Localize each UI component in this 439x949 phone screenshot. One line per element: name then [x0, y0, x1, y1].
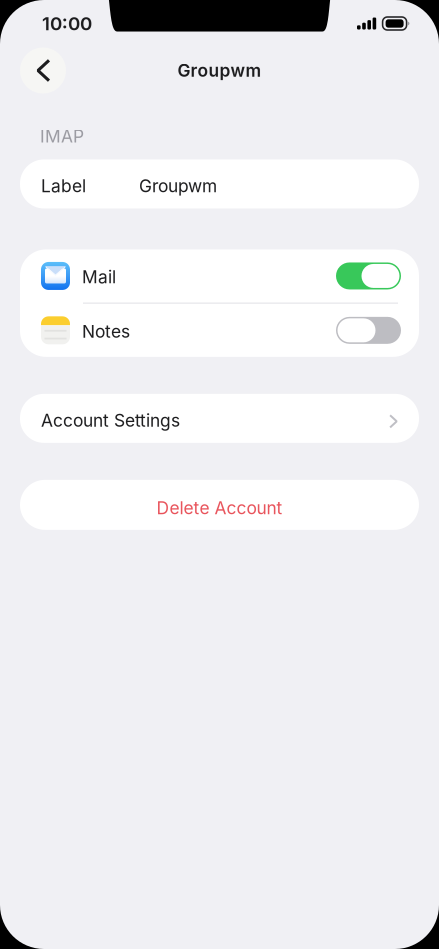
button[interactable]: Delete Account — [20, 480, 419, 530]
button[interactable]: Account Settings — [20, 394, 419, 443]
staticText: Delete Account — [156, 498, 282, 518]
staticText: Label — [41, 176, 86, 196]
button[interactable]: Back — [20, 47, 66, 93]
staticText: 10:00 — [42, 12, 92, 34]
staticText: Groupwm — [177, 60, 261, 81]
staticText: Notes — [82, 321, 130, 341]
staticText: IMAP — [40, 126, 84, 146]
staticText: Groupwm — [139, 176, 217, 196]
staticText: Mail — [82, 267, 116, 287]
staticText: Account Settings — [41, 410, 180, 430]
